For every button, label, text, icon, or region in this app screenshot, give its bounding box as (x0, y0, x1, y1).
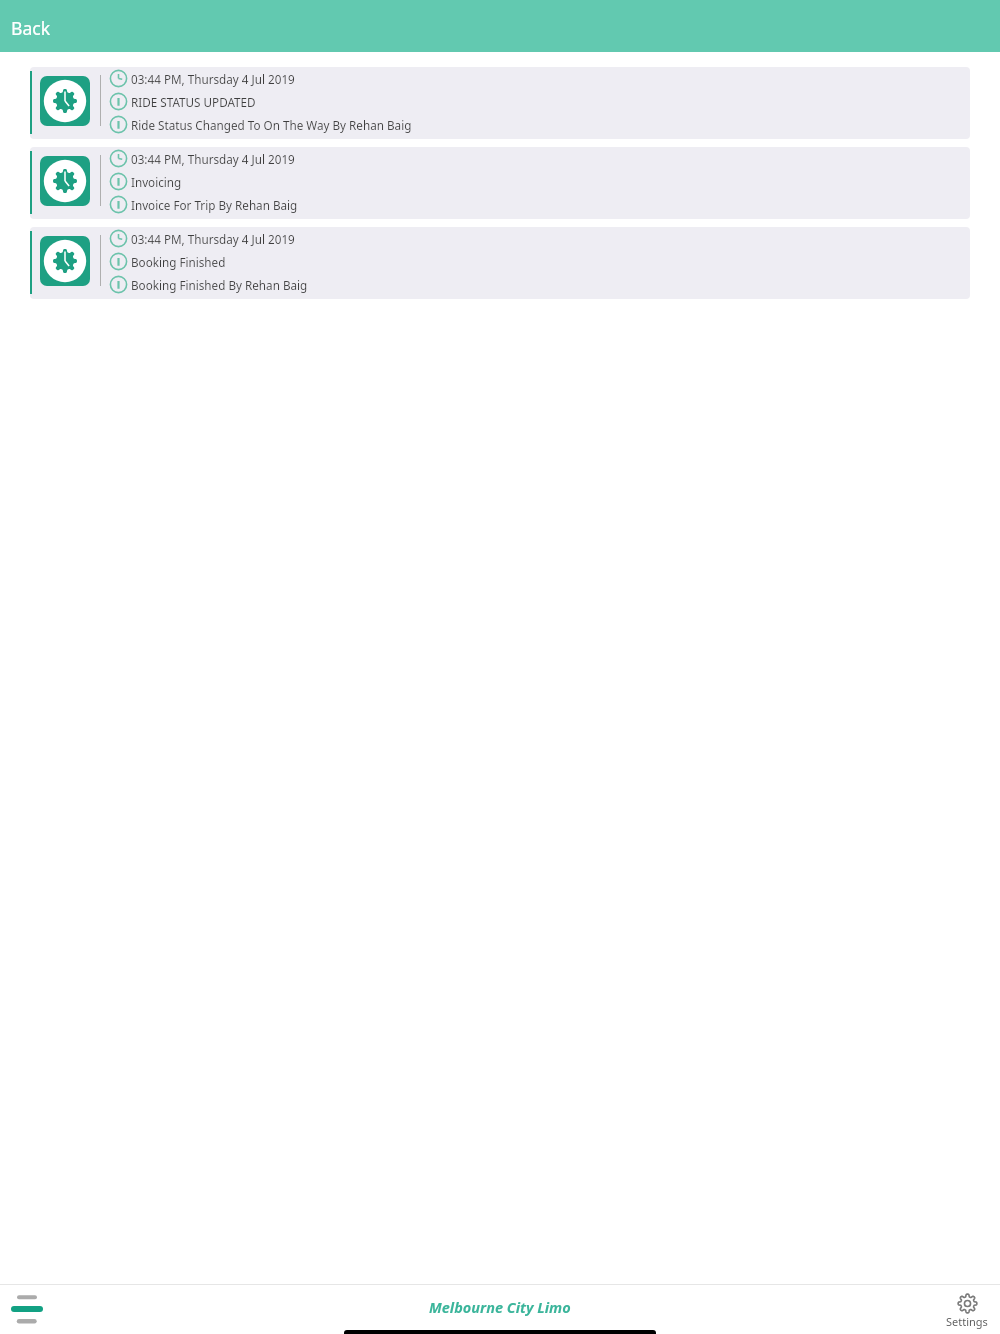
button[interactable]: Open navigation menu (6, 1289, 46, 1329)
staticText: 03:44 PM, Thursday 4 Jul 2019 (131, 71, 295, 87)
staticText: 03:44 PM, Thursday 4 Jul 2019 (131, 151, 295, 167)
button[interactable]: 03:44 PM, Thursday 4 Jul 2019 (30, 147, 970, 219)
button[interactable]: Settings (946, 1293, 988, 1329)
staticText: RIDE STATUS UPDATED (131, 94, 256, 110)
staticText: Settings (946, 1314, 988, 1329)
button[interactable]: 03:44 PM, Thursday 4 Jul 2019 (30, 67, 970, 139)
staticText: Booking Finished (131, 254, 226, 270)
button[interactable]: Melbourne City Limo (429, 1297, 571, 1317)
staticText: Melbourne City Limo (429, 1297, 571, 1317)
staticText: Invoice For Trip By Rehan Baig (131, 197, 298, 213)
button[interactable]: 03:44 PM, Thursday 4 Jul 2019 (30, 227, 970, 299)
staticText: Booking Finished By Rehan Baig (131, 277, 308, 293)
staticText: Back (11, 16, 51, 40)
staticText: Ride Status Changed To On The Way By Reh… (131, 117, 412, 133)
staticText: Invoicing (131, 174, 182, 190)
staticText: 03:44 PM, Thursday 4 Jul 2019 (131, 231, 295, 247)
button[interactable]: Back (0, 0, 1000, 52)
